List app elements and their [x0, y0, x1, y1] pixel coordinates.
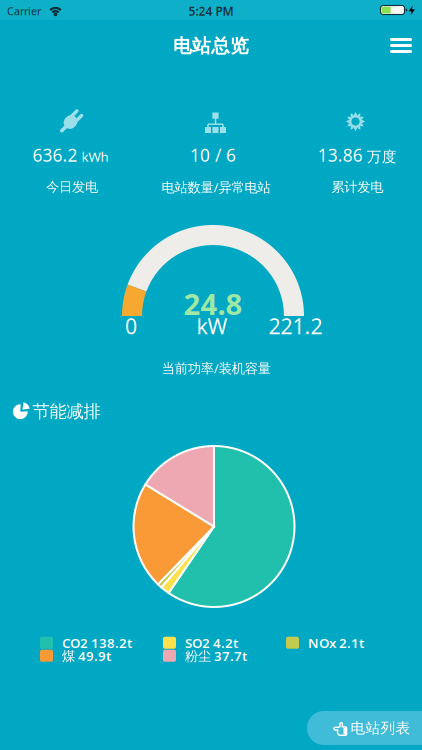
- button[interactable]: NOx 2.1t: [286, 634, 364, 652]
- staticText: 24.8: [183, 284, 242, 323]
- staticText: 636.2: [32, 143, 77, 166]
- staticText: Carrier: [7, 4, 41, 18]
- staticText: NOx 2.1t: [308, 634, 364, 652]
- staticText: 累计发电: [331, 179, 383, 195]
- staticText: 221.2: [268, 312, 322, 340]
- button[interactable]: SO2 4.2t: [163, 634, 238, 652]
- staticText: 13.86: [318, 143, 363, 166]
- button[interactable]: Menu: [390, 38, 412, 53]
- staticText: 今日发电: [46, 179, 98, 195]
- staticText: 电站总览: [173, 34, 249, 57]
- staticText: 5:24 PM: [188, 3, 233, 19]
- staticText: 10 / 6: [190, 143, 236, 166]
- staticText: 0: [125, 312, 137, 340]
- button[interactable]: 粉尘 37.7t: [163, 647, 247, 665]
- button[interactable]: 煤 49.9t: [40, 647, 111, 665]
- staticText: 万度: [367, 148, 397, 166]
- button[interactable]: 电站列表: [307, 711, 422, 745]
- staticText: CO2 138.2t: [62, 634, 132, 652]
- staticText: 当前功率/装机容量: [162, 359, 271, 377]
- staticText: 节能减排: [32, 401, 100, 422]
- staticText: 煤 49.9t: [62, 647, 111, 665]
- staticText: SO2 4.2t: [185, 634, 238, 652]
- staticText: 电站列表: [350, 719, 410, 737]
- staticText: kW: [196, 312, 227, 340]
- staticText: 粉尘 37.7t: [185, 647, 247, 665]
- staticText: 电站数量/异常电站: [161, 178, 270, 196]
- button[interactable]: CO2 138.2t: [40, 634, 132, 652]
- staticText: kWh: [81, 148, 108, 165]
